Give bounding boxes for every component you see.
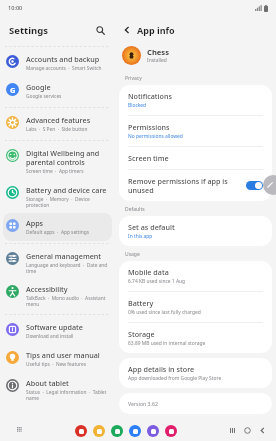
staticText: Software update (26, 322, 83, 332)
staticText: Tips and user manual (26, 350, 100, 360)
staticText: Blocked (128, 102, 147, 109)
staticText: Mobile data (128, 267, 169, 277)
button[interactable]: Edit (263, 175, 276, 195)
staticText: App info (137, 24, 175, 36)
button[interactable]: Digital Wellbeing and parental controls (3, 143, 112, 180)
button[interactable]: Battery (119, 292, 272, 323)
staticText: Download and install (26, 333, 74, 340)
staticText: About tablet (26, 378, 69, 388)
staticText: TalkBack · Mono audio · Assistant menu (26, 295, 108, 307)
staticText: Accounts and backup (26, 54, 100, 64)
staticText: Set as default (128, 222, 175, 232)
button[interactable]: Office (75, 425, 87, 437)
button[interactable]: Accounts and backup (3, 49, 112, 77)
button[interactable]: Messages (129, 425, 141, 437)
staticText: Advanced features (26, 115, 91, 125)
staticText: Google (26, 82, 51, 92)
staticText: G (10, 85, 16, 95)
staticText: Installed (147, 57, 167, 64)
button[interactable]: Storage (119, 323, 272, 353)
staticText: Notifications (128, 91, 172, 101)
button[interactable]: Home (240, 423, 255, 438)
button[interactable]: Screen time (119, 147, 272, 170)
staticText: App downloaded from Google Play Store (128, 375, 222, 382)
button[interactable]: Files (93, 425, 105, 437)
staticText: Usage (125, 251, 140, 258)
staticText: Settings (9, 24, 48, 37)
button[interactable]: Apps (3, 213, 112, 241)
staticText: In this app (128, 233, 153, 240)
button[interactable]: Battery and device care (3, 180, 112, 213)
staticText: Version 3.62 (128, 400, 158, 407)
button[interactable]: Remove permissions if app is unused (119, 170, 272, 201)
button[interactable]: Recents (225, 423, 240, 438)
staticText: Status · Legal information · Tablet name (26, 389, 108, 401)
staticText: Screen time · App timers (26, 168, 84, 175)
staticText: Useful tips · New features (26, 361, 87, 368)
staticText: App details in store (128, 364, 195, 374)
button[interactable]: Phone (111, 425, 123, 437)
button[interactable]: Mobile data (119, 261, 272, 292)
staticText: 6.74 KB used since 1 Aug (128, 278, 186, 285)
staticText: 10:00 (8, 4, 23, 12)
staticText: 63.89 MB used in internal storage (128, 340, 206, 347)
staticText: Remove permissions if app is unused (128, 176, 246, 195)
staticText: Accessibility (26, 284, 68, 294)
button[interactable]: Chat (147, 425, 159, 437)
button[interactable]: Search (93, 23, 107, 37)
button[interactable]: General management (3, 246, 112, 279)
button[interactable]: Accessibility (3, 279, 112, 312)
staticText: General management (26, 251, 102, 261)
button[interactable]: Back (255, 423, 270, 438)
staticText: Battery (128, 298, 154, 308)
staticText: Apps (26, 218, 44, 228)
staticText: Labs · S Pen · Side button (26, 126, 88, 133)
staticText: Default apps · App settings (26, 229, 90, 236)
button[interactable]: Apps (14, 424, 27, 437)
staticText: Chess (147, 47, 169, 57)
staticText: Permissions (128, 122, 170, 132)
staticText: Defaults (125, 206, 145, 213)
button[interactable]: Notifications (119, 85, 272, 116)
button[interactable]: Back (120, 23, 134, 37)
staticText: Google services (26, 93, 62, 100)
button[interactable]: Remove permissions toggle (246, 181, 263, 190)
button[interactable]: App details in store (119, 358, 272, 388)
staticText: Privacy (125, 75, 142, 82)
button[interactable]: Advanced features (3, 110, 112, 138)
button[interactable]: G (3, 77, 112, 105)
button[interactable]: Camera (165, 425, 177, 437)
staticText: Language and keyboard · Date and time (26, 262, 108, 274)
button[interactable]: Set as default (119, 216, 272, 246)
staticText: 0% used since last fully charged (128, 309, 201, 316)
button[interactable]: About tablet (3, 373, 112, 406)
staticText: Digital Wellbeing and parental controls (26, 148, 108, 167)
button[interactable]: Tips and user manual (3, 345, 112, 373)
staticText: No permissions allowed (128, 133, 183, 140)
button[interactable]: Permissions (119, 116, 272, 147)
button[interactable]: Software update (3, 317, 112, 345)
staticText: Manage accounts · Smart Switch (26, 65, 102, 72)
staticText: Storage (128, 329, 155, 339)
staticText: Battery and device care (26, 185, 107, 195)
staticText: Storage · Memory · Device protection (26, 196, 108, 208)
staticText: Screen time (128, 153, 169, 163)
